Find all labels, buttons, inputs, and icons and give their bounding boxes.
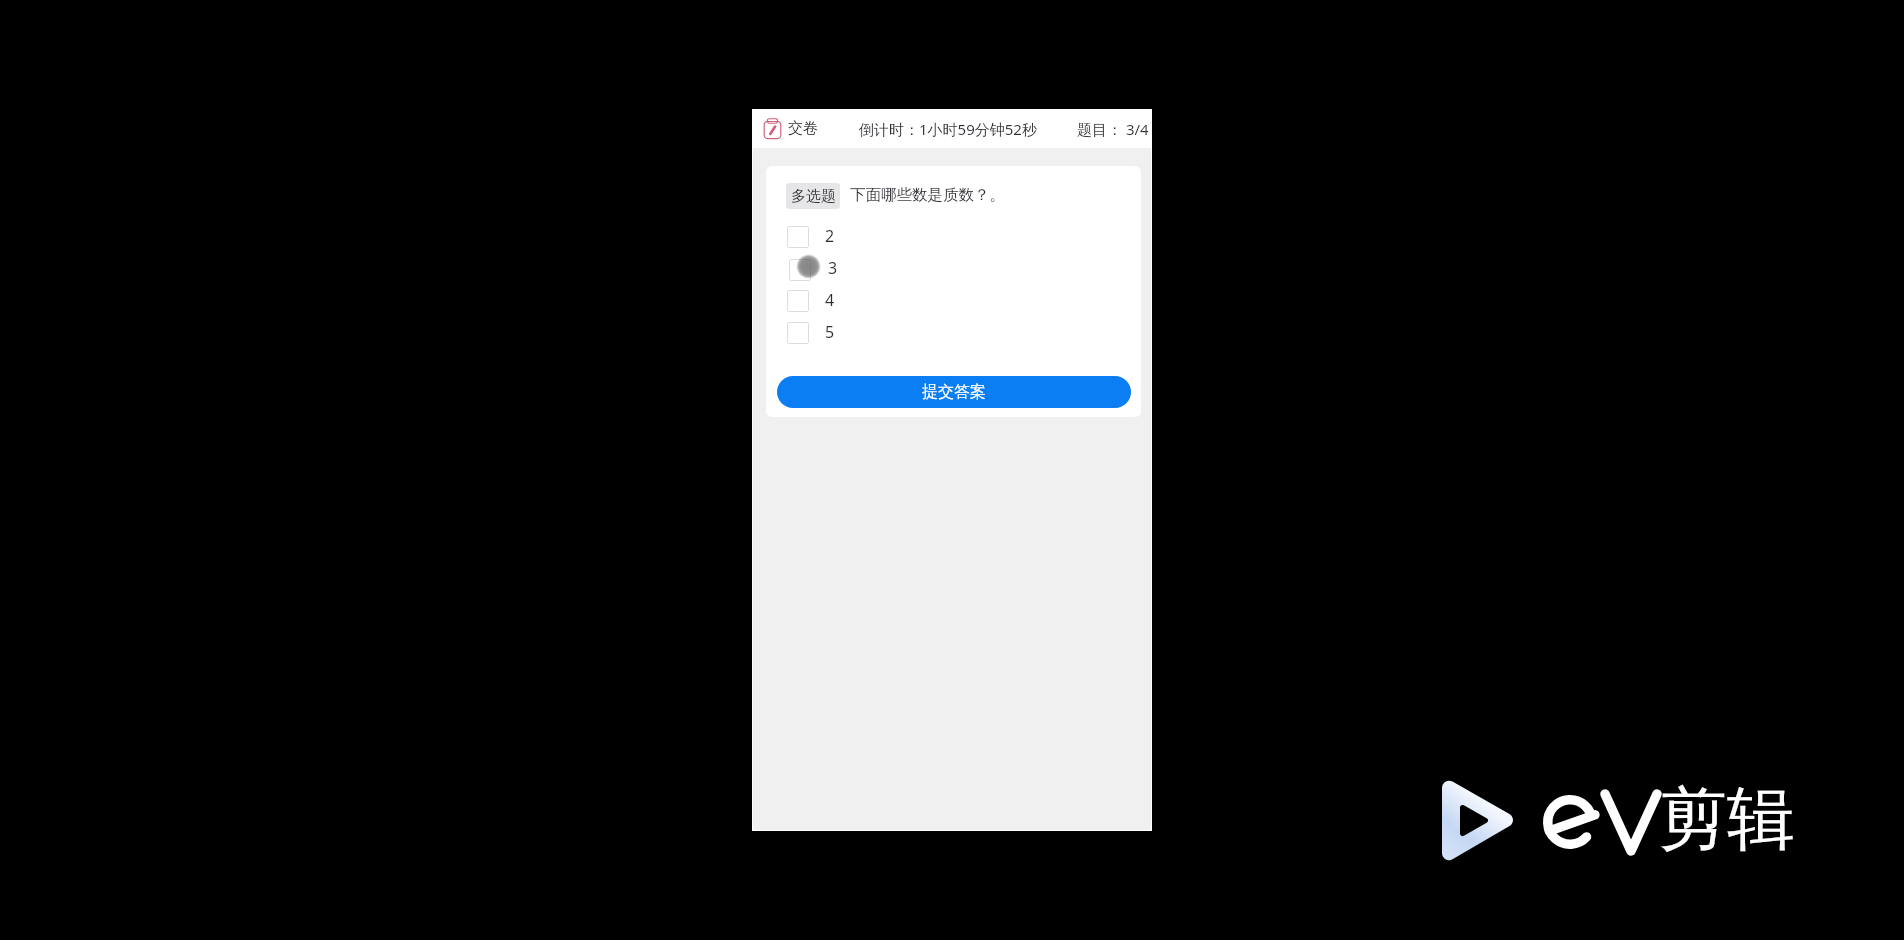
button[interactable]: 4 [780, 285, 1127, 317]
other: 交卷 [762, 117, 783, 140]
button[interactable]: 提交答案 [777, 376, 1131, 408]
staticText: 5 [825, 321, 835, 343]
staticText: 题目： 3/4 [1077, 119, 1149, 139]
staticText: 下面哪些数是质数？。 [850, 185, 1005, 205]
staticText: 3 [828, 257, 838, 279]
button[interactable]: 交卷 [762, 109, 818, 148]
button[interactable]: 2 [780, 221, 1127, 253]
staticText: 2 [825, 225, 835, 247]
staticText: 交卷 [788, 119, 818, 138]
button[interactable]: 5 [780, 317, 1127, 349]
staticText: 剪辑 [1659, 777, 1795, 863]
staticText: 倒计时：1小时59分钟52秒 [859, 119, 1037, 139]
button[interactable]: 3 [780, 253, 1127, 285]
staticText: 多选题 [791, 187, 836, 206]
staticText: 提交答案 [922, 382, 986, 402]
staticText: 4 [825, 289, 835, 311]
